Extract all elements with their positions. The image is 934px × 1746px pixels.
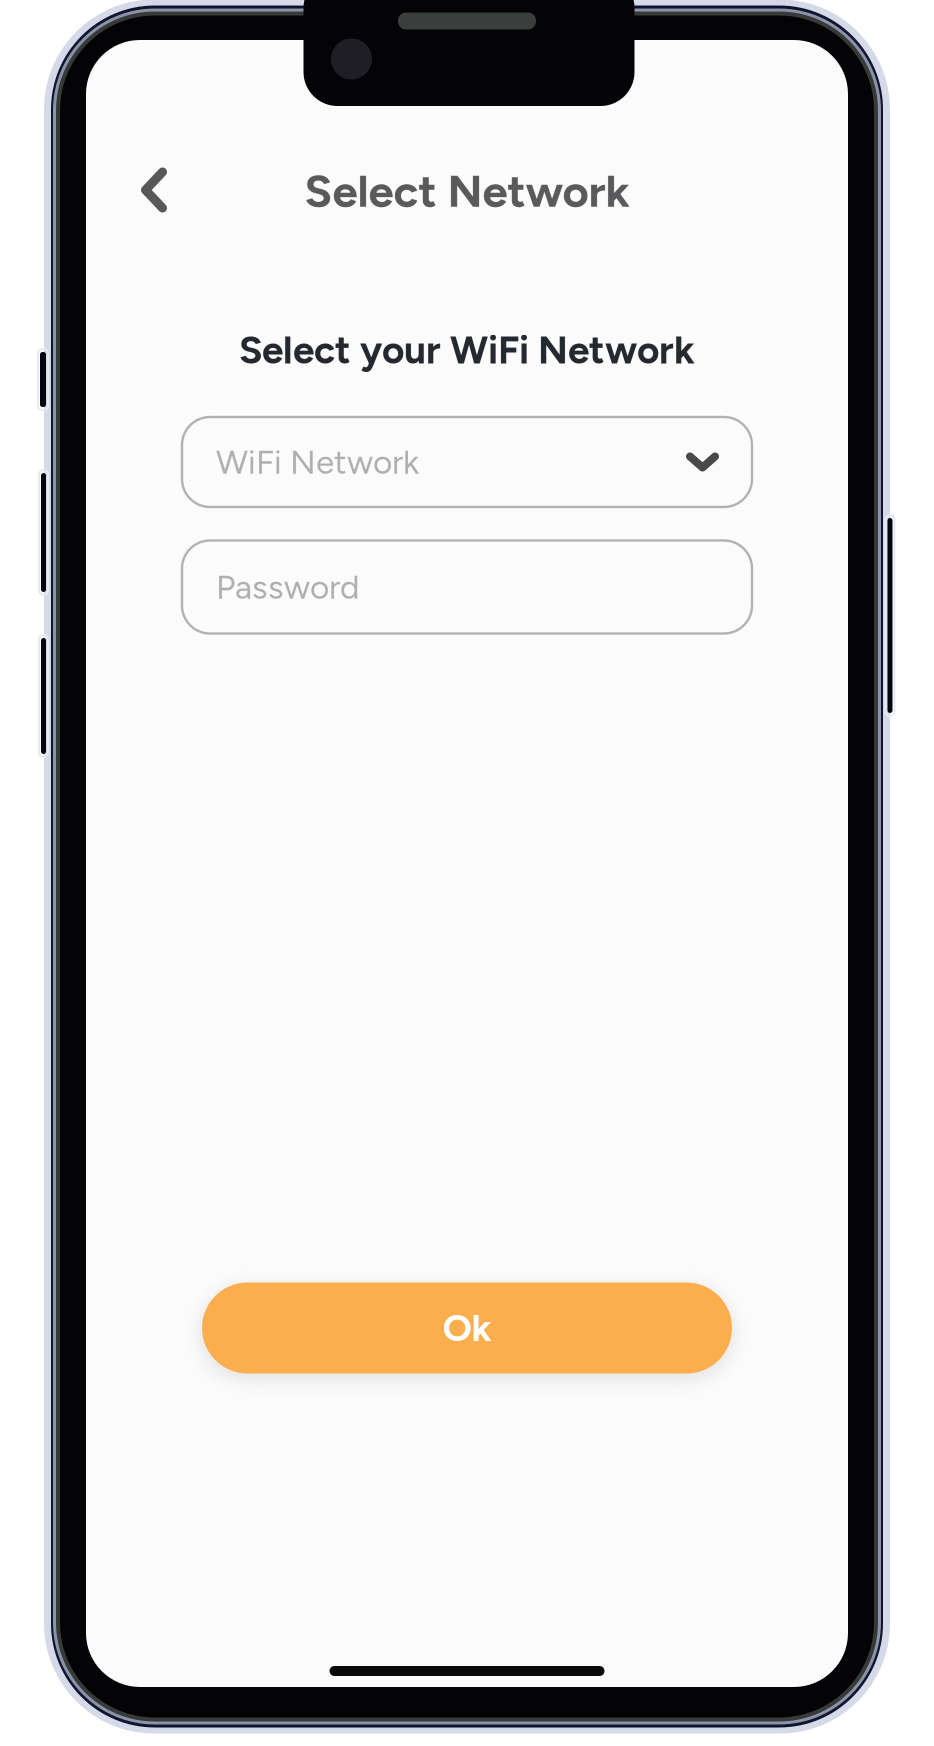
- staticText: Select Network: [304, 164, 629, 218]
- staticText: Ok: [442, 1306, 491, 1350]
- staticText: Password: [216, 567, 360, 607]
- staticText: WiFi Network: [216, 442, 419, 482]
- button[interactable]: Password: [182, 540, 752, 633]
- button[interactable]: Back: [108, 146, 200, 234]
- button[interactable]: Ok: [202, 1282, 732, 1373]
- button[interactable]: WiFi Network: [182, 417, 752, 507]
- staticText: Select your WiFi Network: [239, 327, 695, 373]
